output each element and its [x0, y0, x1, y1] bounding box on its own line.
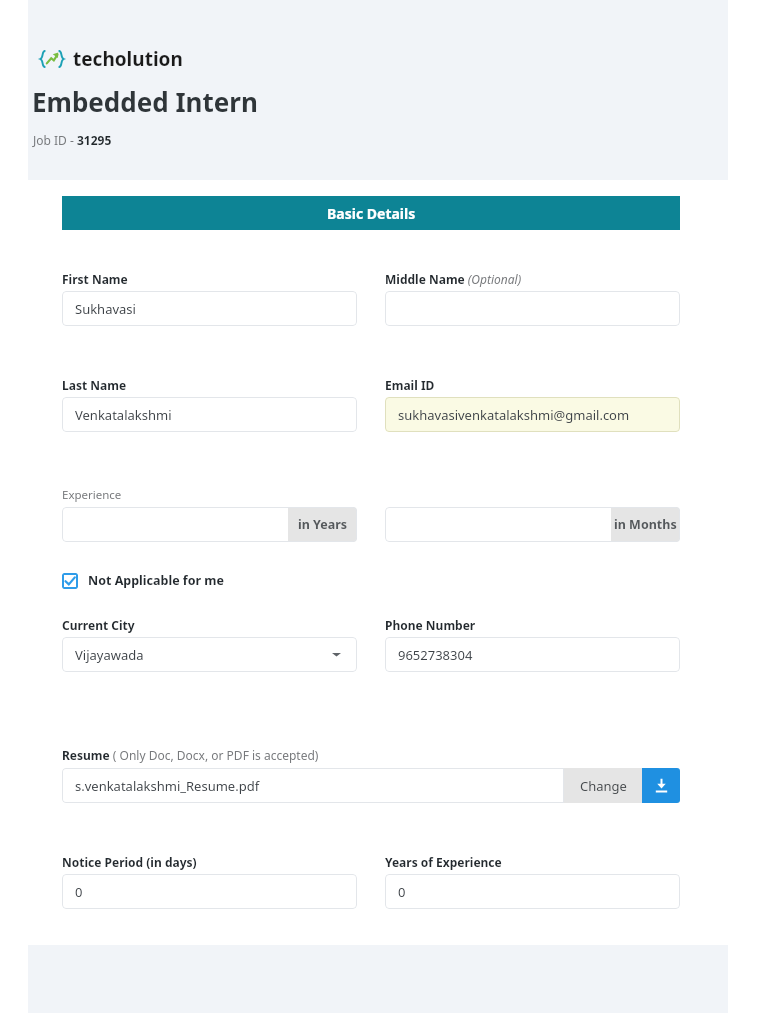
staticText: 0	[398, 883, 406, 901]
staticText: Resume ( Only Doc, Docx, or PDF is accep…	[62, 747, 319, 763]
staticText: Experience	[62, 487, 122, 503]
button[interactable]: Venkatalakshmi	[62, 397, 357, 432]
staticText: Last Name	[62, 377, 127, 393]
button[interactable]: sukhavasivenkatalakshmi@gmail.com	[385, 397, 680, 432]
staticText: s.venkatalakshmi_Resume.pdf	[75, 777, 260, 795]
button[interactable]: s.venkatalakshmi_Resume.pdf	[62, 768, 564, 803]
staticText: Sukhavasi	[75, 300, 136, 318]
button[interactable]: 9652738304	[385, 637, 680, 672]
staticText: Embedded Intern	[32, 84, 258, 119]
button[interactable]: Sukhavasi	[62, 291, 357, 326]
staticText: Vijayawada	[75, 646, 144, 664]
button[interactable]: 0	[385, 874, 680, 909]
staticText: Current City	[62, 617, 135, 633]
staticText: Notice Period (in days)	[62, 854, 197, 870]
staticText: Not Applicable for me	[88, 572, 224, 589]
button[interactable]: in Months	[385, 507, 680, 542]
staticText: in Years	[298, 516, 348, 533]
button[interactable]: Change	[564, 768, 642, 803]
button[interactable]: 0	[62, 874, 357, 909]
button[interactable]: in Years	[62, 507, 357, 542]
staticText: 9652738304	[398, 646, 473, 664]
staticText: Years of Experience	[385, 854, 502, 870]
button[interactable]: Basic Details	[62, 196, 680, 230]
staticText: sukhavasivenkatalakshmi@gmail.com	[398, 406, 630, 424]
staticText: Phone Number	[385, 617, 476, 633]
staticText: First Name	[62, 271, 128, 287]
staticText: in Months	[614, 516, 677, 533]
staticText: Job ID - 31295	[33, 132, 112, 148]
staticText: Venkatalakshmi	[75, 406, 172, 424]
staticText: Email ID	[385, 377, 435, 393]
staticText: Change	[580, 777, 627, 795]
staticText: Basic Details	[327, 204, 416, 223]
staticText: Middle Name (Optional)	[385, 271, 522, 287]
button[interactable]	[385, 291, 680, 326]
staticText: 0	[75, 883, 83, 901]
button[interactable]: Download resume	[642, 768, 680, 803]
button[interactable]: Not Applicable for me	[62, 572, 224, 589]
button[interactable]: Current City dropdown	[62, 637, 357, 672]
staticText: techolution	[73, 46, 183, 72]
